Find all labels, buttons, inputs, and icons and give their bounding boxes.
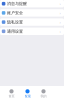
staticText: 我的 <box>40 94 46 98</box>
button[interactable]: 首页 <box>3 89 19 98</box>
staticText: 发现 <box>24 94 30 98</box>
staticText: 消息与提醒 <box>7 1 27 6</box>
button[interactable]: 通用设置 <box>0 28 64 35</box>
staticText: 通用设置 <box>7 29 23 34</box>
staticText: 首页 <box>8 94 14 98</box>
staticText: 账户安全 <box>7 10 23 15</box>
button[interactable]: 隐私设置 <box>0 18 64 26</box>
button[interactable]: 消息与提醒 <box>0 0 64 7</box>
button[interactable]: 我的 <box>35 89 51 98</box>
button[interactable]: 账户安全 <box>0 9 64 17</box>
staticText: 隐私设置 <box>7 20 23 25</box>
button[interactable]: 发现 <box>19 89 35 98</box>
